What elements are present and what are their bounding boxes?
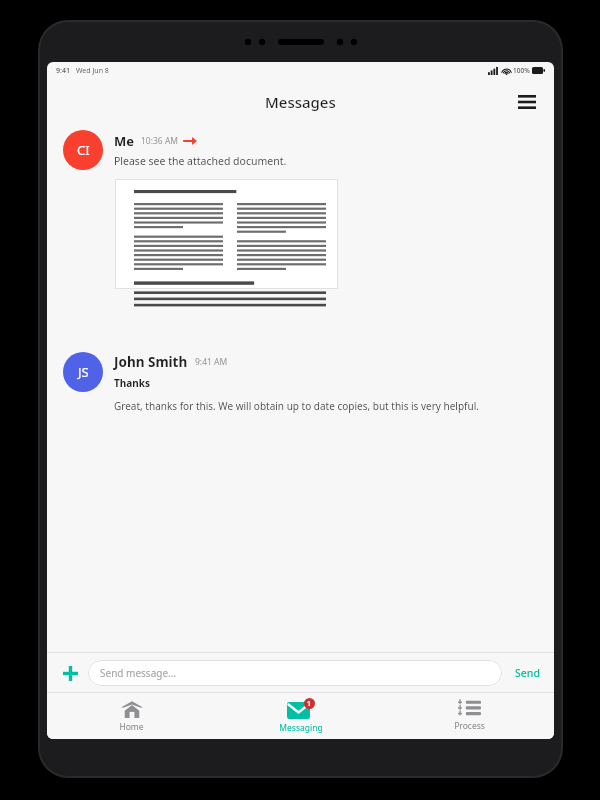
staticText: JS bbox=[78, 363, 89, 381]
staticText: Me bbox=[114, 132, 135, 150]
button[interactable]: JS bbox=[63, 352, 103, 392]
staticText: Messaging bbox=[279, 722, 323, 734]
staticText: Great, thanks for this. We will obtain u… bbox=[114, 399, 479, 413]
staticText: Thanks bbox=[114, 376, 150, 390]
staticText: Messages bbox=[265, 92, 336, 112]
staticText: Send message... bbox=[100, 666, 177, 680]
button[interactable]: Add attachment bbox=[57, 660, 83, 686]
button[interactable]: Home bbox=[47, 693, 216, 739]
button[interactable]: Send bbox=[511, 660, 544, 686]
staticText: Please see the attached document. bbox=[114, 154, 287, 168]
staticText: 100% bbox=[513, 66, 530, 75]
button[interactable]: Process bbox=[385, 693, 554, 739]
staticText: 9:41 AM bbox=[195, 356, 228, 368]
staticText: Wed Jun 8 bbox=[76, 66, 109, 76]
staticText: Home bbox=[119, 721, 144, 733]
button[interactable]: Send message... bbox=[88, 660, 502, 686]
staticText: 1 bbox=[307, 699, 312, 709]
button[interactable]: CI bbox=[63, 130, 103, 170]
staticText: 9:41 bbox=[56, 66, 70, 76]
button[interactable]: Attached document preview bbox=[115, 179, 338, 289]
button[interactable]: Menu bbox=[512, 87, 542, 117]
staticText: Send bbox=[515, 666, 540, 680]
button[interactable]: 1 bbox=[216, 693, 385, 739]
staticText: John Smith bbox=[114, 353, 188, 371]
staticText: Process bbox=[454, 720, 485, 732]
staticText: CI bbox=[77, 141, 90, 159]
staticText: 10:36 AM bbox=[141, 135, 179, 147]
